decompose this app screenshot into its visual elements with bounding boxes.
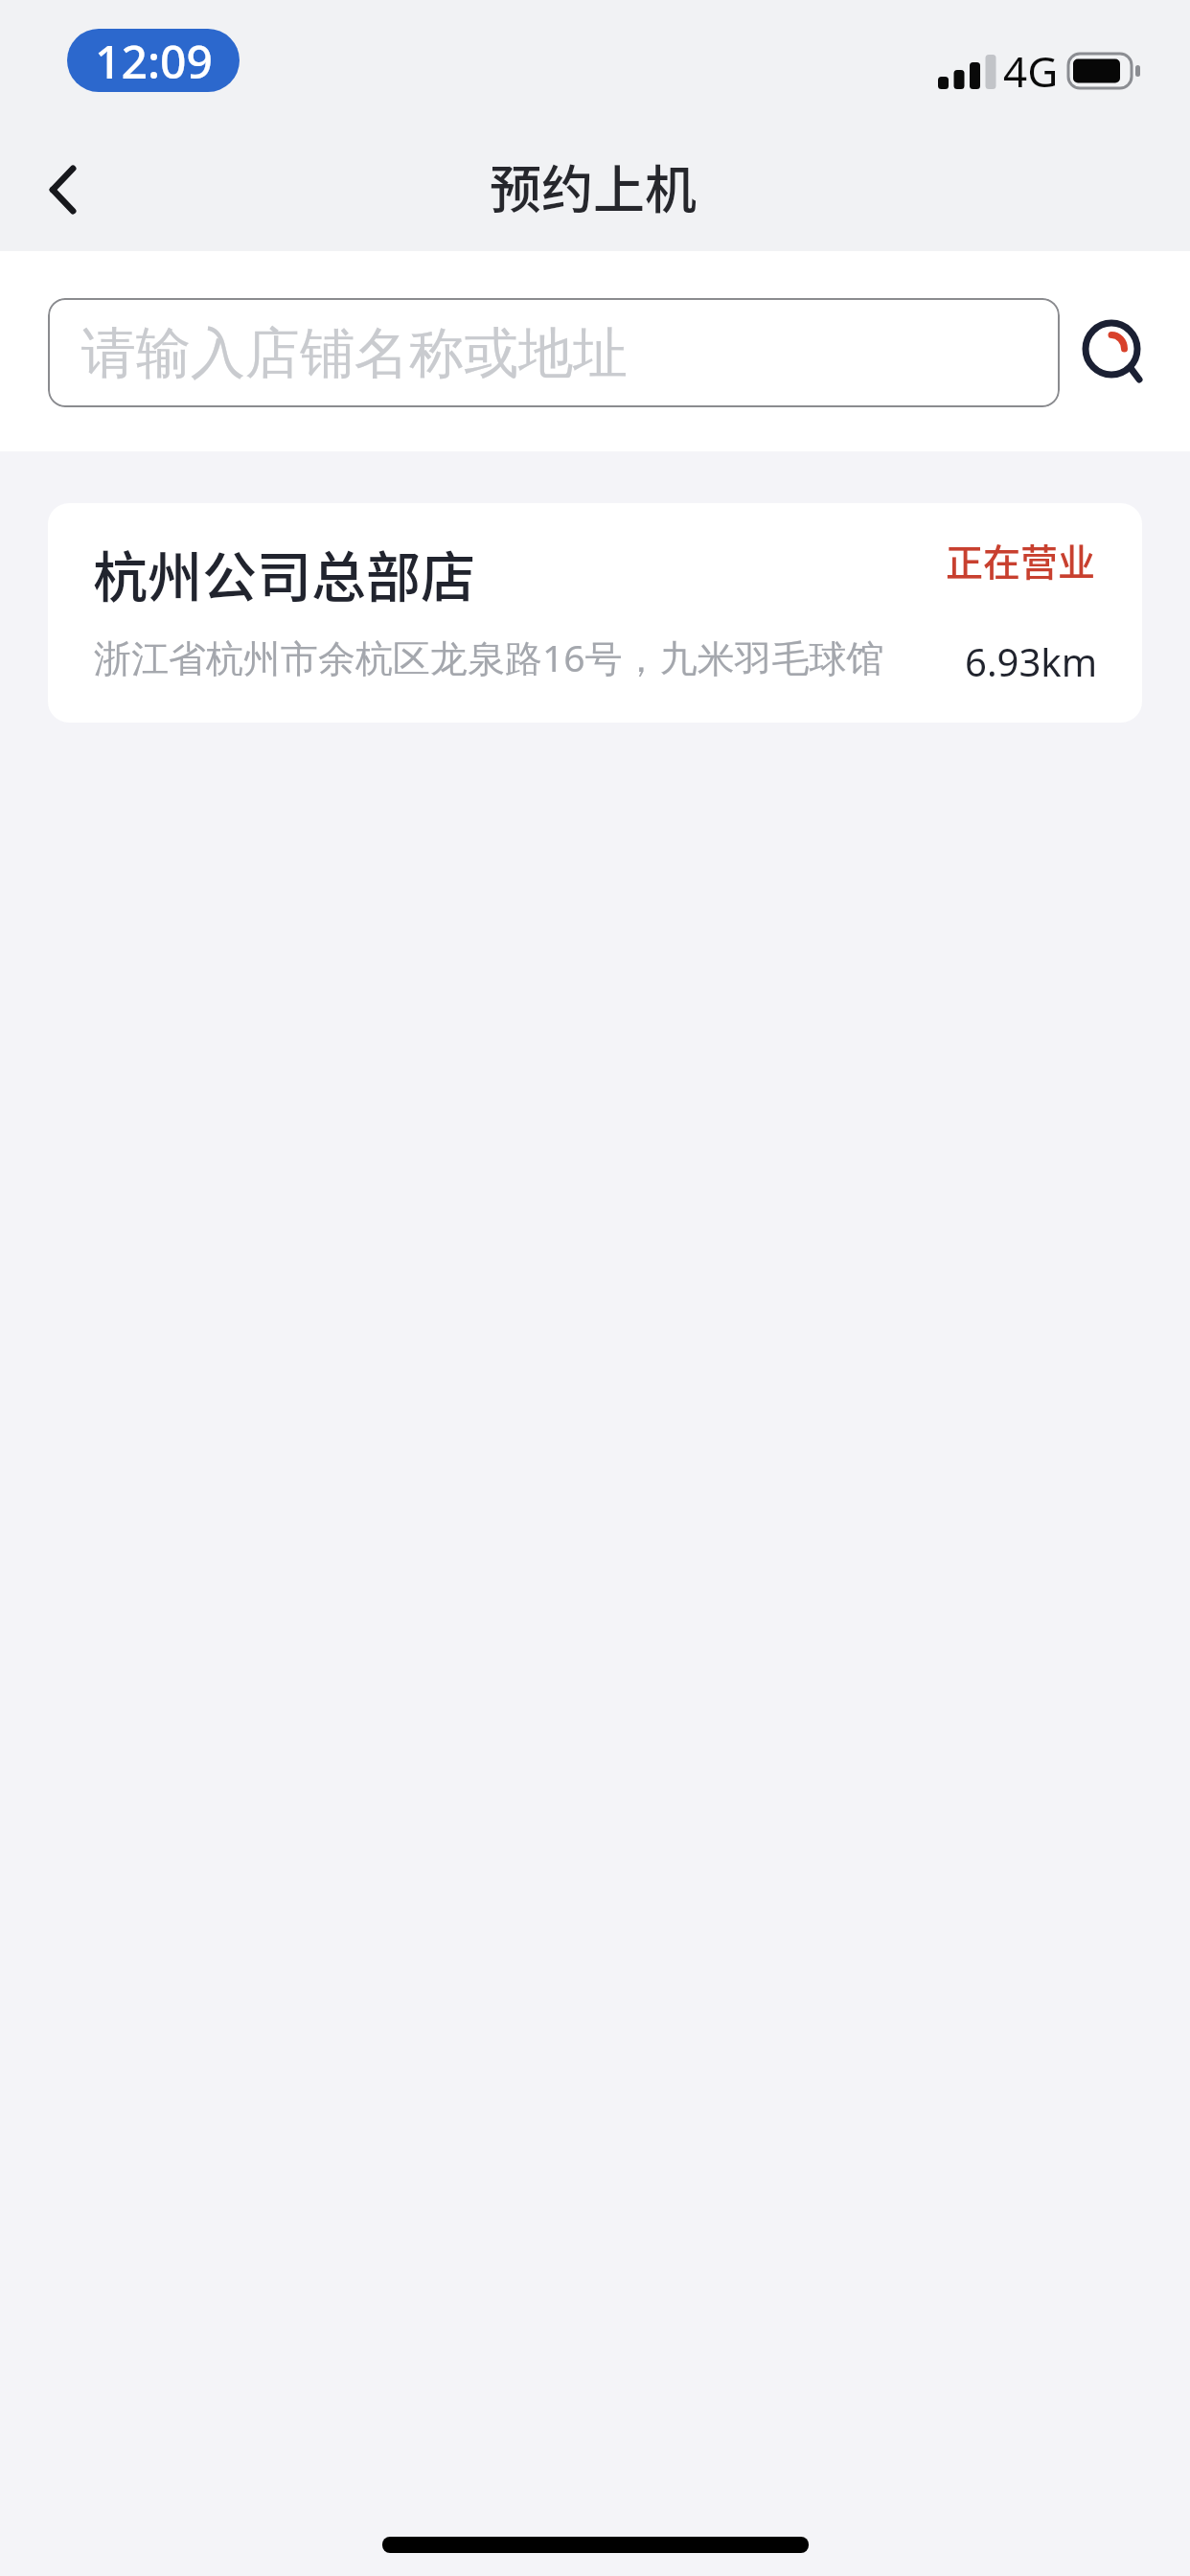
button[interactable]: Back [0,140,125,243]
staticText: 4G [1003,42,1059,100]
button[interactable]: 请输入店铺名称或地址 [48,298,1060,407]
staticText: 杭州公司总部店 [93,534,475,613]
staticText: 6.93km [965,635,1098,687]
staticText: 预约上机 [490,149,697,223]
staticText: 浙江省杭州市余杭区龙泉路16号，九米羽毛球馆 [94,632,884,682]
staticText: 请输入店铺名称或地址 [81,319,628,388]
button[interactable]: Search [1067,291,1175,410]
staticText: 12:09 [95,30,213,92]
button[interactable]: 杭州公司总部店 [48,503,1142,723]
staticText: 正在营业 [946,533,1096,586]
